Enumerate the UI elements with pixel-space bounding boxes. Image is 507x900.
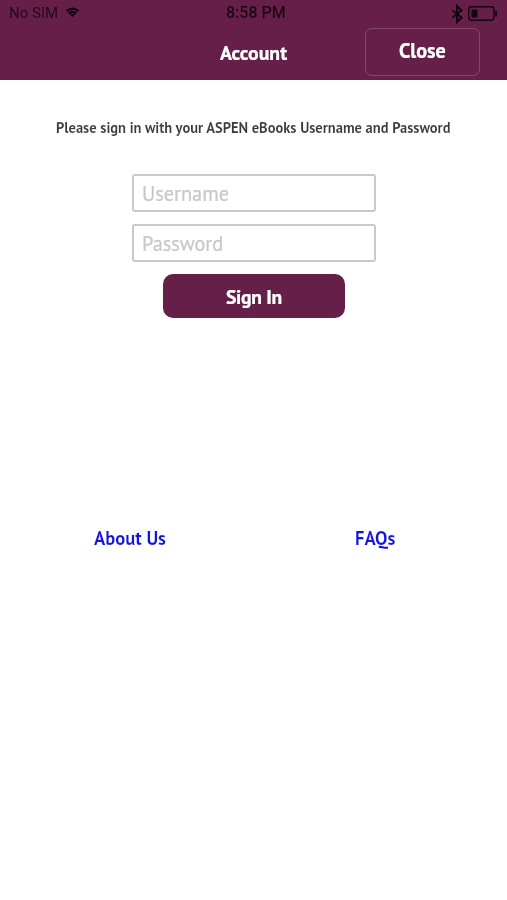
button[interactable]: Username [132, 174, 376, 212]
staticText: 8:58 PM [226, 3, 286, 22]
button[interactable]: Close [365, 28, 480, 76]
button[interactable]: Password [132, 224, 376, 262]
other: Battery [468, 6, 497, 21]
staticText: Account [220, 40, 288, 66]
button[interactable]: Sign In [163, 274, 345, 318]
staticText: No SIM [9, 4, 59, 22]
button[interactable]: About Us [85, 523, 175, 553]
staticText: Username [142, 180, 229, 206]
staticText: Please sign in with your ASPEN eBooks Us… [56, 118, 451, 137]
other: Wi-Fi [63, 4, 82, 17]
other: Bluetooth [452, 6, 462, 22]
staticText: FAQs [355, 526, 396, 550]
button[interactable]: FAQs [345, 523, 405, 553]
staticText: Close [399, 37, 446, 63]
staticText: Password [142, 230, 224, 256]
staticText: About Us [94, 526, 166, 550]
staticText: Sign In [226, 284, 282, 309]
